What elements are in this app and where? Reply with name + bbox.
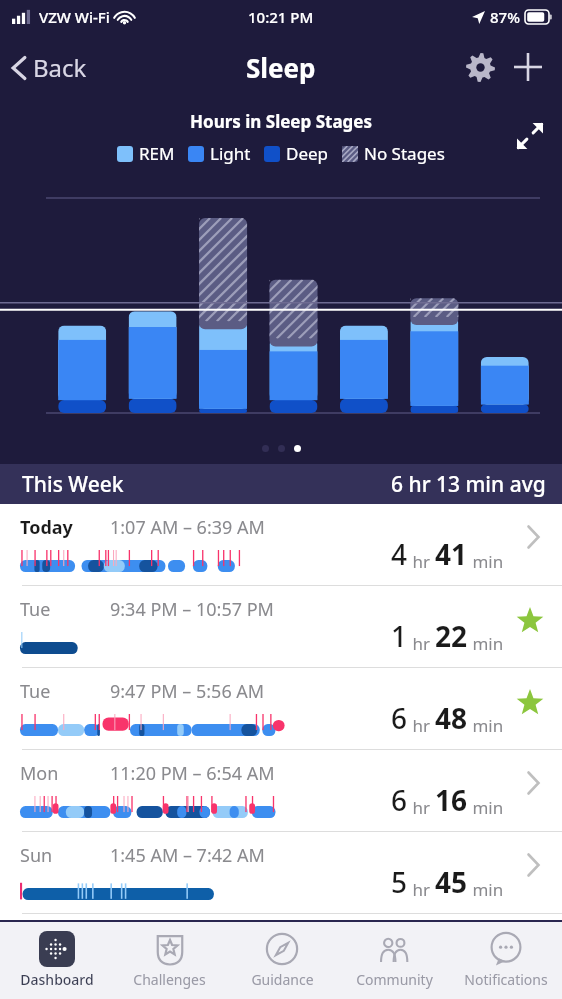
staticText: 11:20 PM – 6:54 AM [110,761,275,786]
button[interactable]: Dashboard [0,922,113,999]
staticText: 22 [435,617,468,655]
button[interactable]: Settings [456,43,504,91]
staticText: 1:45 AM – 7:42 AM [110,843,265,868]
staticText: 41 [435,535,468,573]
staticText: min [468,550,504,573]
staticText: Sleep [246,50,316,85]
staticText: 4 [391,535,408,573]
staticText: 87% [490,7,520,27]
button[interactable]: Add [504,43,552,91]
staticText: Deep [286,142,329,165]
staticText: No Stages [364,142,445,165]
staticText: Guidance [251,970,314,989]
staticText: hr [408,632,435,655]
staticText: Notifications [464,970,548,989]
staticText: VZW Wi-Fi [39,7,110,27]
staticText: Mon [20,761,110,786]
button[interactable]: Today [0,504,562,586]
button[interactable]: Sun [0,832,562,914]
staticText: 6 [391,781,408,819]
staticText: 6 [391,699,408,737]
staticText: Back [33,51,87,84]
button[interactable]: Notifications [450,922,562,999]
button[interactable]: Mon [0,750,562,832]
staticText: REM [139,142,175,165]
staticText: Today [20,515,110,540]
staticText: Tue [20,679,110,704]
button[interactable]: Community [338,922,450,999]
staticText: Community [356,970,433,989]
staticText: Tue [20,597,110,622]
button[interactable]: Tue [0,586,562,668]
staticText: 16 [435,781,468,819]
button[interactable]: Challenges [113,922,226,999]
staticText: 5 [391,863,408,901]
staticText: min [468,714,504,737]
button[interactable]: Expand chart [508,114,552,158]
staticText: This Week [22,470,124,499]
staticText: 1:07 AM – 6:39 AM [110,515,265,540]
staticText: hr [408,550,435,573]
button[interactable]: Guidance [226,922,338,999]
staticText: 10:21 PM [248,7,314,27]
staticText: hr [408,796,435,819]
staticText: min [468,632,504,655]
staticText: 9:34 PM – 10:57 PM [110,597,274,622]
staticText: hr [408,714,435,737]
staticText: min [468,796,504,819]
staticText: min [468,878,504,901]
staticText: Challenges [133,970,206,989]
staticText: 1 [391,617,408,655]
staticText: hr [408,878,435,901]
staticText: 6 hr 13 min avg [391,470,546,499]
button[interactable]: Back [0,43,101,92]
staticText: Light [210,142,251,165]
button[interactable]: Tue [0,668,562,750]
staticText: 9:47 PM – 5:56 AM [110,679,265,704]
staticText: 48 [435,699,468,737]
staticText: 45 [435,863,468,901]
staticText: Dashboard [20,970,94,989]
staticText: Hours in Sleep Stages [190,110,373,133]
staticText: Sun [20,843,110,868]
